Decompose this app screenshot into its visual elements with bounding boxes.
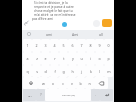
- button[interactable]: Ami: [62, 30, 88, 38]
- staticText: j: [81, 69, 82, 74]
- staticText: h: [71, 69, 74, 74]
- button[interactable]: 6: [68, 39, 77, 52]
- button[interactable]: all: [88, 30, 114, 38]
- button[interactable]: !#1: [23, 89, 36, 101]
- button[interactable]: ?: [36, 89, 45, 101]
- staticText: o: [98, 56, 101, 61]
- button[interactable]: j: [77, 65, 86, 77]
- button[interactable]: k: [86, 65, 95, 77]
- button[interactable]: y: [68, 52, 77, 65]
- button[interactable]: l: [95, 65, 104, 77]
- staticText: z: [36, 56, 38, 61]
- button[interactable]: u: [77, 52, 86, 65]
- staticText: m'ai attiré, ça ne m'intéresse: [34, 13, 76, 16]
- staticText: !#1: [28, 94, 32, 97]
- staticText: p: [107, 56, 110, 61]
- button[interactable]: g: [59, 65, 68, 77]
- staticText: pas d'être ami: [32, 17, 54, 21]
- button[interactable]: Keyboard settings: [22, 30, 36, 38]
- staticText: r: [54, 56, 56, 61]
- staticText: y: [72, 56, 74, 61]
- staticText: e: [44, 56, 47, 61]
- staticText: m: [107, 69, 111, 74]
- button[interactable]: f: [50, 65, 59, 77]
- staticText: 0: [107, 43, 110, 48]
- staticText: i: [90, 56, 91, 61]
- staticText: s: [36, 69, 38, 74]
- button[interactable]: m: [104, 65, 113, 77]
- button[interactable]: Français (FR): [45, 89, 91, 101]
- button[interactable]: 9: [95, 39, 104, 52]
- button[interactable]: 7: [77, 39, 86, 52]
- staticText: c: [62, 81, 64, 86]
- button[interactable]: i: [86, 52, 95, 65]
- button[interactable]: x: [48, 77, 58, 89]
- staticText: all: [99, 32, 103, 37]
- button[interactable]: 0: [104, 39, 113, 52]
- button[interactable]: e: [41, 52, 50, 65]
- staticText: 6: [71, 43, 74, 48]
- button[interactable]: Key: [100, 89, 113, 101]
- staticText: 3: [44, 43, 47, 48]
- staticText: a: [26, 56, 29, 61]
- button[interactable]: r: [50, 52, 59, 65]
- button[interactable]: ami: [36, 30, 62, 38]
- staticText: b: [79, 81, 82, 86]
- button[interactable]: c: [58, 77, 67, 89]
- button[interactable]: w: [38, 77, 48, 89]
- staticText: Français (FR): [62, 94, 75, 97]
- staticText: 1: [26, 43, 29, 48]
- staticText: .: [95, 93, 96, 97]
- button[interactable]: Emoji: [93, 20, 100, 27]
- button[interactable]: p: [104, 52, 113, 65]
- button[interactable]: z: [32, 52, 41, 65]
- button[interactable]: 3: [41, 39, 50, 52]
- staticText: l: [99, 69, 100, 74]
- button[interactable]: Key: [23, 77, 38, 89]
- button[interactable]: t: [59, 52, 68, 65]
- staticText: Si c'est ta décision, je la: [34, 1, 68, 5]
- staticText: ?: [40, 93, 42, 97]
- staticText: 9: [98, 43, 101, 48]
- staticText: f: [54, 69, 56, 74]
- staticText: 7: [80, 43, 83, 48]
- staticText: 5: [62, 43, 65, 48]
- button[interactable]: b: [76, 77, 85, 89]
- button[interactable]: 2: [32, 39, 41, 52]
- staticText: 2: [35, 43, 38, 48]
- button[interactable]: Attach file: [22, 18, 32, 28]
- staticText: chose malgré le fait que tu: [34, 9, 73, 13]
- button[interactable]: 5: [59, 39, 68, 52]
- button[interactable]: q: [23, 65, 32, 77]
- staticText: 4: [53, 43, 56, 48]
- button[interactable]: n: [85, 77, 94, 89]
- button[interactable]: Send: [102, 19, 112, 27]
- button[interactable]: 1: [23, 39, 32, 52]
- button[interactable]: 8: [86, 39, 95, 52]
- button[interactable]: v: [67, 77, 76, 89]
- button[interactable]: d: [41, 65, 50, 77]
- staticText: w: [42, 81, 45, 86]
- button[interactable]: s: [32, 65, 41, 77]
- staticText: u: [80, 56, 83, 61]
- staticText: t: [63, 56, 65, 61]
- staticText: q: [26, 69, 29, 74]
- staticText: v: [71, 81, 73, 86]
- staticText: x: [52, 81, 54, 86]
- button[interactable]: a: [23, 52, 32, 65]
- staticText: k: [90, 69, 92, 74]
- staticText: Ami: [72, 32, 79, 37]
- button[interactable]: h: [68, 65, 77, 77]
- staticText: g: [62, 69, 65, 74]
- staticText: respecte et je passe à autre: [34, 5, 74, 9]
- staticText: ami: [46, 32, 52, 37]
- staticText: n: [88, 81, 91, 86]
- button[interactable]: Key: [94, 77, 108, 89]
- button[interactable]: o: [95, 52, 104, 65]
- staticText: 8: [89, 43, 92, 48]
- button[interactable]: 4: [50, 39, 59, 52]
- staticText: d: [44, 69, 47, 74]
